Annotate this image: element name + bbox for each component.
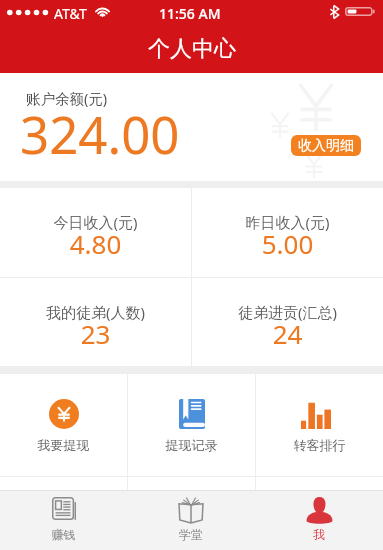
button[interactable]: 我的徒弟(人数) — [0, 278, 191, 366]
button[interactable]: 昨日收入(元) — [192, 188, 383, 277]
staticText: 账户余额(元) — [26, 88, 108, 108]
staticText: 我的徒弟(人数) — [0, 302, 191, 322]
staticText: AT&T — [54, 4, 87, 23]
button[interactable]: 收入明细 — [291, 135, 361, 156]
staticText: 我要提现 — [0, 437, 127, 453]
button[interactable]: 转客排行 — [256, 374, 383, 476]
staticText: 24 — [192, 316, 383, 351]
staticText: 11:56 AM — [159, 4, 221, 23]
button[interactable]: 学堂 — [127, 491, 255, 550]
staticText: 徒弟进贡(汇总) — [192, 302, 383, 322]
staticText: 赚钱 — [0, 527, 127, 542]
button[interactable]: 赚钱 — [0, 491, 127, 550]
button[interactable]: 提现记录 — [128, 374, 255, 476]
button[interactable]: 我要提现 — [0, 374, 127, 476]
button[interactable]: 徒弟进贡(汇总) — [192, 278, 383, 366]
button[interactable]: 今日收入(元) — [0, 188, 191, 277]
staticText: 5.00 — [192, 226, 383, 261]
staticText: 4.80 — [0, 226, 191, 261]
staticText: 今日收入(元) — [0, 212, 191, 232]
staticText: 324.00 — [20, 99, 180, 168]
staticText: 23 — [0, 316, 191, 351]
staticText: 个人中心 — [148, 35, 236, 63]
staticText: 学堂 — [127, 527, 255, 542]
staticText: 我 — [255, 527, 383, 542]
staticText: 转客排行 — [256, 437, 383, 453]
staticText: 昨日收入(元) — [192, 212, 383, 232]
staticText: 收入明细 — [298, 137, 354, 155]
staticText: 提现记录 — [128, 437, 255, 453]
button[interactable]: 我 — [255, 491, 383, 550]
